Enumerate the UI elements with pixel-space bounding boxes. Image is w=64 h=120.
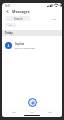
staticText: Edit bbox=[52, 17, 57, 20]
staticText: Search bbox=[14, 17, 23, 21]
staticText: · bbox=[18, 24, 19, 27]
button[interactable]: Home bbox=[8, 110, 20, 115]
staticText: 9:41 bbox=[5, 4, 11, 8]
button[interactable]: Profile bbox=[44, 110, 56, 115]
staticText: Messages bbox=[12, 9, 30, 14]
staticText: See you tomorrow bbox=[15, 47, 35, 50]
staticText: All bbox=[9, 24, 12, 27]
button[interactable]: Back bbox=[5, 9, 10, 14]
button[interactable]: Search bbox=[5, 16, 31, 21]
staticText: Today bbox=[5, 31, 13, 35]
staticText: · bbox=[5, 37, 6, 40]
button[interactable]: Today bbox=[2, 30, 62, 36]
staticText: Sophia bbox=[15, 42, 25, 46]
button[interactable]: Sophia bbox=[2, 40, 62, 51]
button[interactable]: All bbox=[5, 23, 16, 27]
button[interactable]: Chats bbox=[26, 110, 38, 115]
button[interactable]: Add bbox=[28, 98, 37, 107]
